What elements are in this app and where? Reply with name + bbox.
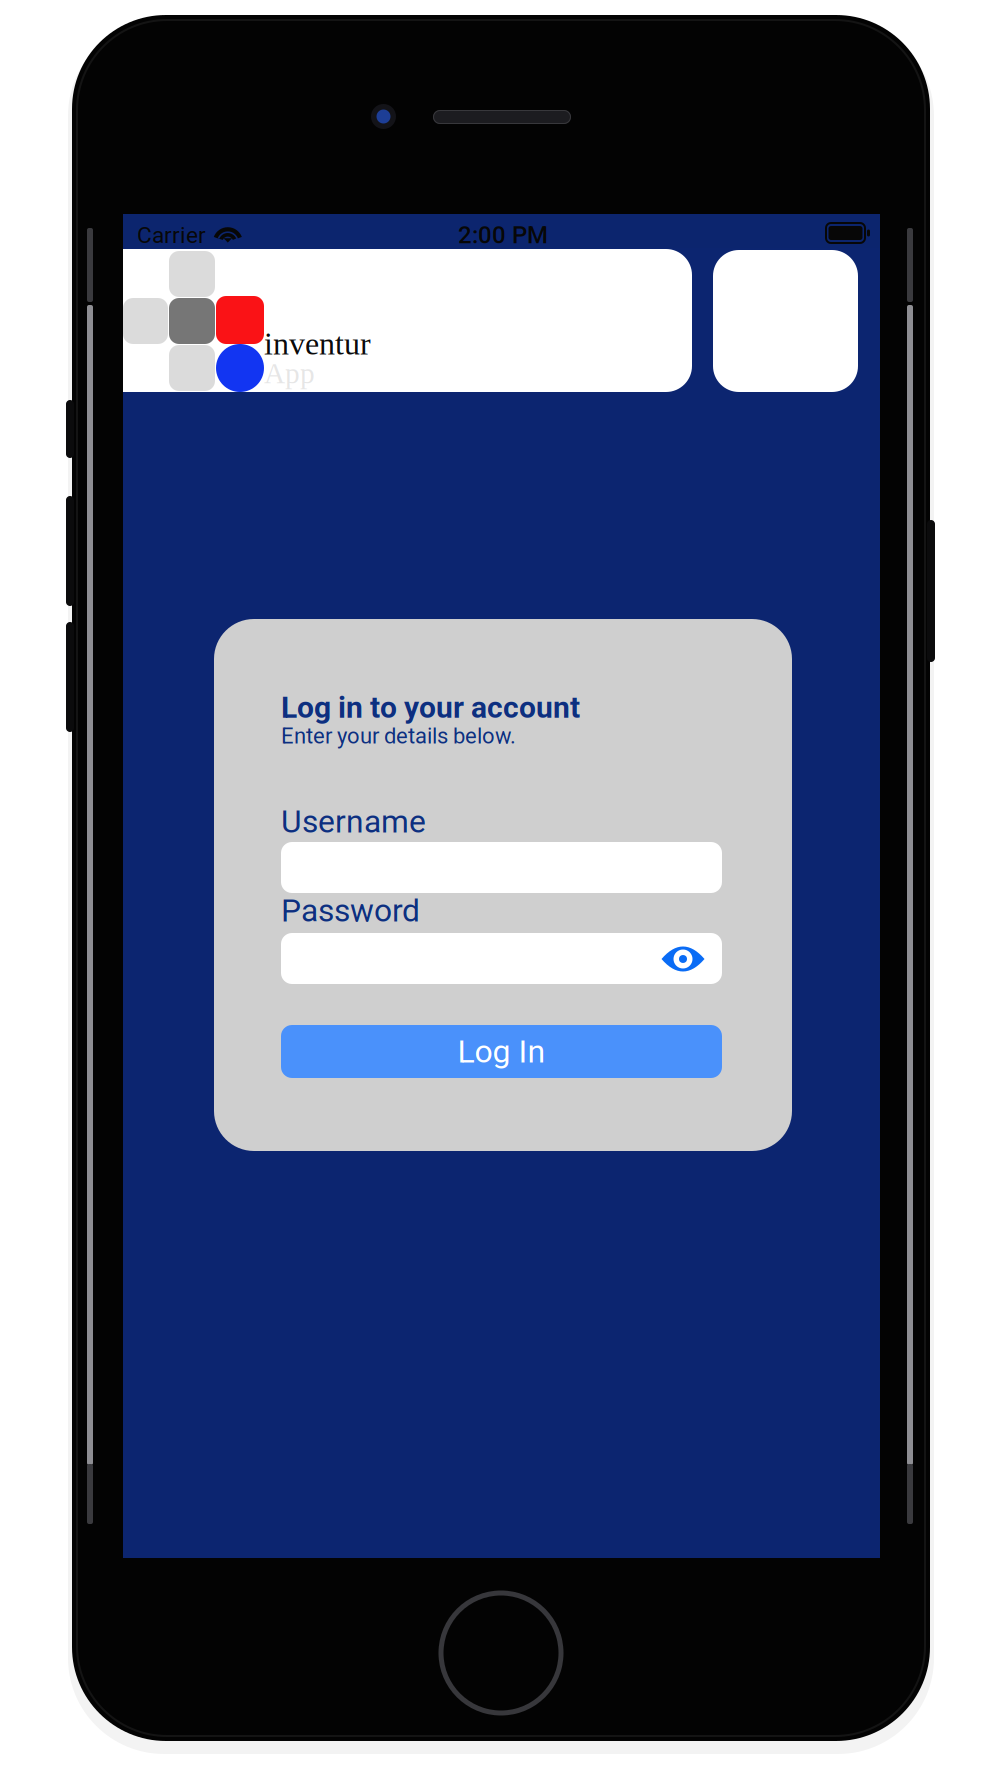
button[interactable]: Menu [713,250,858,392]
staticText: Password [281,892,420,929]
staticText: Enter your details below. [281,723,516,749]
staticText: 2:00 PM [458,221,548,249]
staticText: Log In [457,1033,545,1070]
staticText: Log in to your account [281,690,580,725]
button[interactable]: Log In [281,1025,722,1078]
staticText: inventur [264,326,371,361]
staticText: Carrier [137,222,206,249]
button[interactable]: Show password [281,933,722,984]
staticText: App [264,357,315,389]
staticText: Username [281,803,426,840]
